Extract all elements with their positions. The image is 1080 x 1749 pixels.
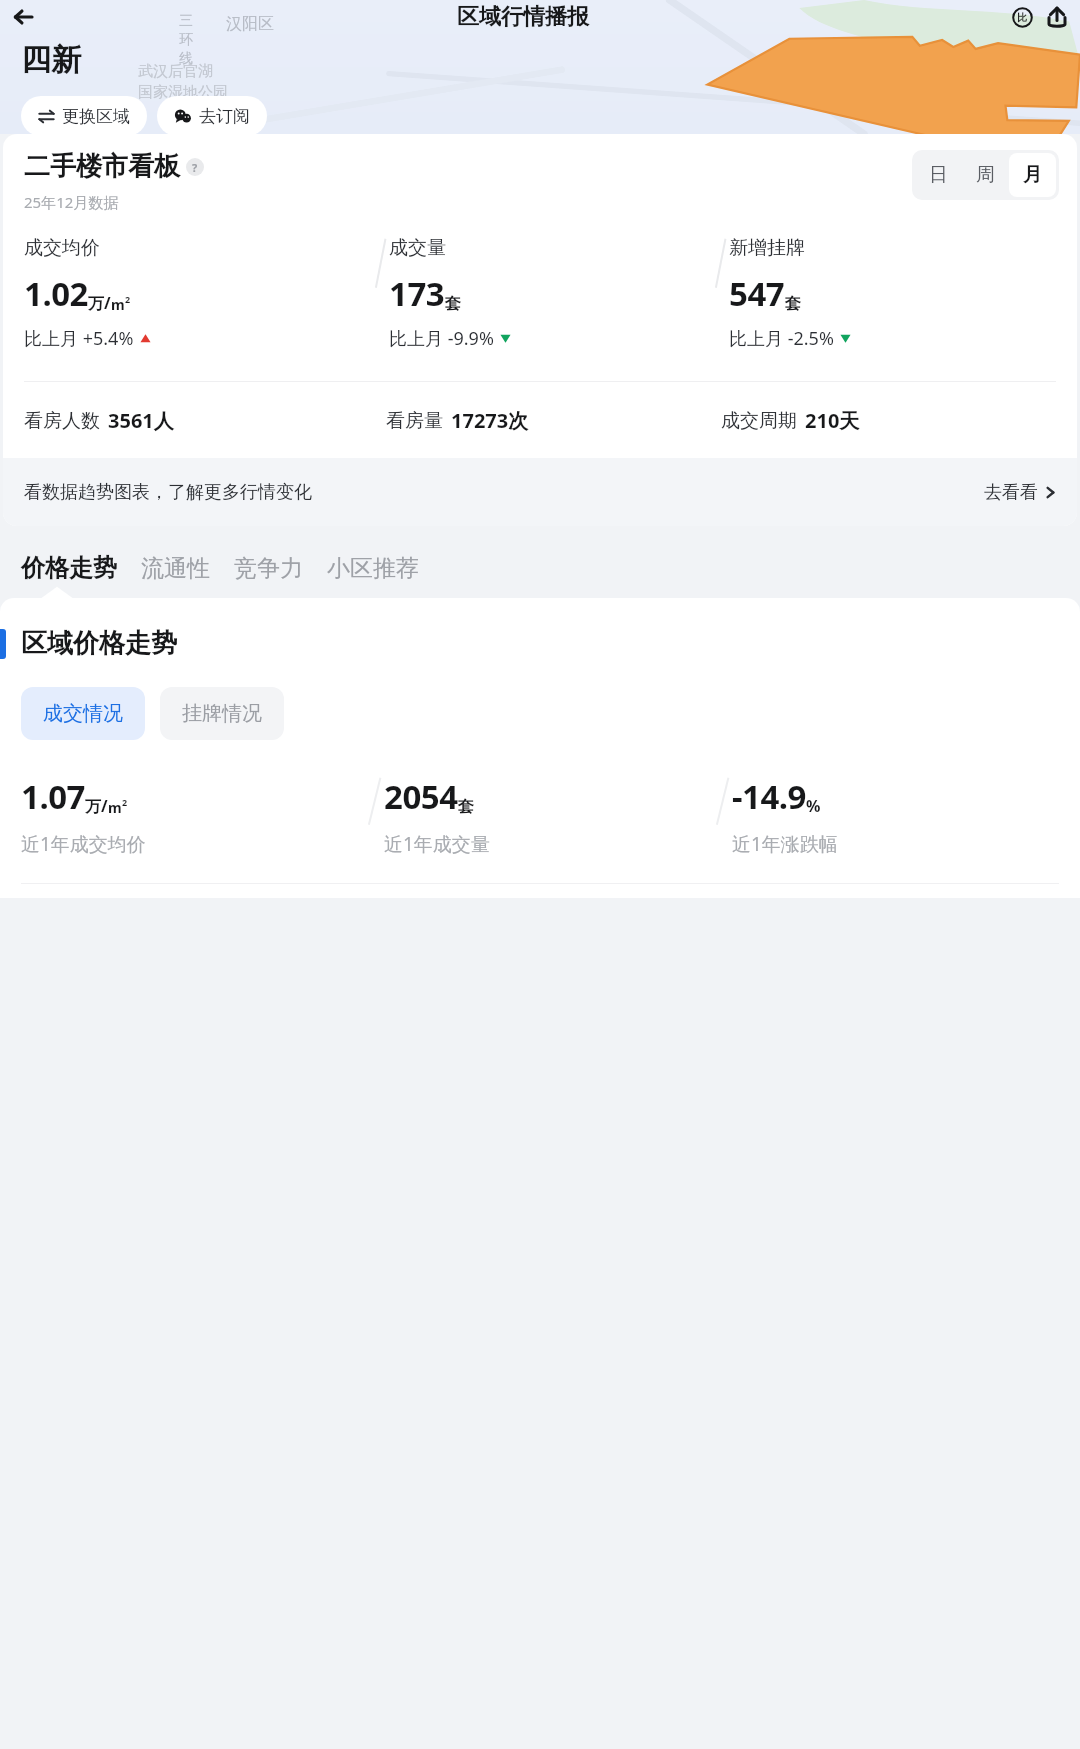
staticText: 成交情况 xyxy=(43,701,123,726)
staticText: m xyxy=(108,798,122,817)
button[interactable]: Share xyxy=(1040,0,1074,34)
button[interactable]: Help xyxy=(186,158,204,176)
staticText: 新增挂牌 xyxy=(729,236,805,260)
staticText: 去订阅 xyxy=(199,106,250,127)
staticText: 套 xyxy=(458,797,474,817)
staticText: 四新 xyxy=(21,41,81,79)
staticText: 近1年涨跌幅 xyxy=(732,831,838,857)
button[interactable]: Back xyxy=(6,0,40,34)
button[interactable]: 竞争力 xyxy=(234,554,327,585)
staticText: 竞争力 xyxy=(234,554,303,583)
staticText: 去看看 xyxy=(984,481,1038,504)
staticText: 比上月 -2.5% xyxy=(729,326,834,351)
button[interactable]: 去订阅 xyxy=(157,96,267,136)
staticText: 3561人 xyxy=(108,407,174,434)
staticText: 月 xyxy=(1023,163,1042,187)
staticText: 区域行情播报 xyxy=(457,3,589,31)
staticText: 更换区域 xyxy=(62,106,130,127)
staticText: 汉阳区 xyxy=(226,14,274,34)
button[interactable]: 更换区域 xyxy=(21,96,147,136)
staticText: 比上月 +5.4% xyxy=(24,326,134,351)
staticText: 2 xyxy=(122,796,128,808)
button[interactable]: 日 xyxy=(915,153,962,197)
staticText: 区域价格走势 xyxy=(21,627,177,660)
staticText: m xyxy=(111,295,125,314)
staticText: 二手楼市看板 xyxy=(24,150,180,183)
staticText: 看房人数 xyxy=(24,409,100,433)
staticText: 173 xyxy=(389,271,445,316)
staticText: 套 xyxy=(445,294,461,314)
button[interactable]: 小区推荐 xyxy=(327,554,443,585)
staticText: 1.02 xyxy=(24,271,88,316)
staticText: 武汉后官湖 xyxy=(138,62,213,81)
staticText: % xyxy=(806,795,821,817)
staticText: 周 xyxy=(976,163,995,187)
staticText: -14.9 xyxy=(732,774,806,819)
staticText: ? xyxy=(192,160,198,175)
staticText: 比上月 -9.9% xyxy=(389,326,494,351)
staticText: 比 xyxy=(1017,11,1027,24)
staticText: 小区推荐 xyxy=(327,554,419,583)
button[interactable]: Compare xyxy=(1006,1,1038,33)
staticText: 看房量 xyxy=(386,409,443,433)
staticText: 2 xyxy=(125,293,131,305)
staticText: 日 xyxy=(929,163,948,187)
staticText: 2054 xyxy=(384,774,458,819)
staticText: 成交周期 xyxy=(721,409,797,433)
button[interactable]: 月 xyxy=(1009,153,1056,197)
button[interactable]: 流通性 xyxy=(141,554,234,585)
staticText: 近1年成交均价 xyxy=(21,831,146,857)
button[interactable]: 看数据趋势图表，了解更多行情变化 xyxy=(3,458,1077,526)
staticText: 1.07 xyxy=(21,774,85,819)
staticText: 成交均价 xyxy=(24,236,100,260)
staticText: 挂牌情况 xyxy=(182,701,262,726)
staticText: 国家湿地公园 xyxy=(138,83,228,102)
staticText: 套 xyxy=(785,294,801,314)
staticText: 三 环 线 xyxy=(179,12,193,67)
button[interactable]: 周 xyxy=(962,153,1009,197)
staticText: 万/ xyxy=(88,292,111,314)
staticText: 17273次 xyxy=(451,407,529,434)
staticText: 万/ xyxy=(85,795,108,817)
button[interactable]: 价格走势 xyxy=(21,553,141,585)
staticText: 近1年成交量 xyxy=(384,831,490,857)
staticText: 210天 xyxy=(805,407,860,434)
staticText: 看数据趋势图表，了解更多行情变化 xyxy=(24,481,312,504)
staticText: 547 xyxy=(729,271,785,316)
button[interactable]: 挂牌情况 xyxy=(160,687,284,740)
staticText: 成交量 xyxy=(389,236,446,260)
staticText: 流通性 xyxy=(141,554,210,583)
button[interactable]: 成交情况 xyxy=(21,687,145,740)
staticText: 25年12月数据 xyxy=(24,192,119,212)
staticText: 价格走势 xyxy=(21,553,117,583)
